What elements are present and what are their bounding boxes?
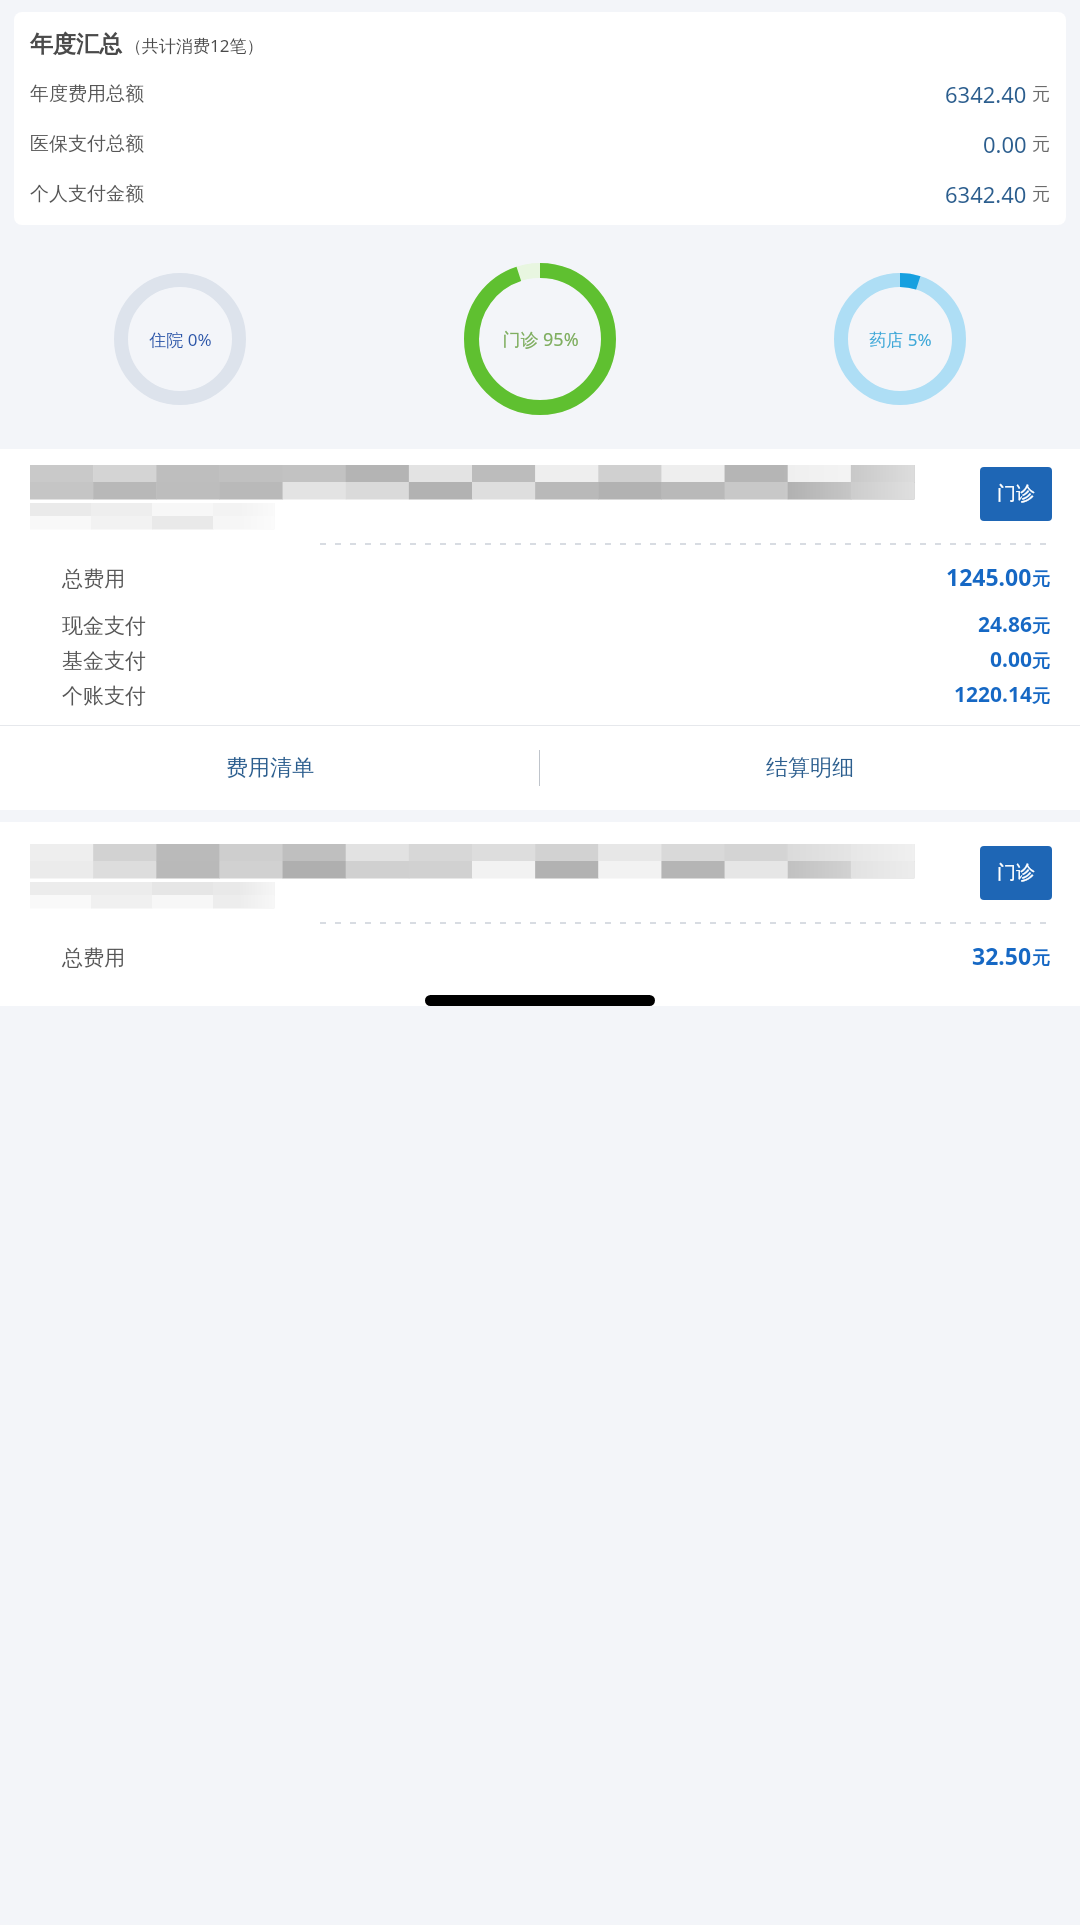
button[interactable]: 门诊 95% — [464, 263, 616, 415]
staticText: 元 — [1032, 568, 1050, 591]
button[interactable]: 门诊 — [0, 449, 1080, 810]
button[interactable]: 门诊 — [980, 467, 1052, 521]
staticText: 基金支付 — [62, 648, 146, 674]
button[interactable]: 门诊 — [0, 822, 1080, 1006]
staticText: 元 — [1032, 83, 1050, 106]
staticText: 0.00 — [990, 645, 1032, 674]
staticText: 元 — [1032, 947, 1050, 970]
staticText: 6342.40 — [945, 179, 1027, 209]
staticText: 年度汇总 — [30, 30, 122, 59]
staticText: 费用清单 — [226, 754, 314, 782]
button[interactable]: 结算明细 — [540, 726, 1080, 810]
staticText: 6342.40 — [945, 79, 1027, 109]
staticText: 总费用 — [62, 566, 125, 592]
staticText: 元 — [1032, 183, 1050, 206]
staticText: 24.86 — [978, 610, 1032, 639]
staticText: 元 — [1032, 650, 1050, 673]
staticText: 药店 5% — [869, 328, 932, 351]
staticText: 1220.14 — [954, 680, 1032, 709]
staticText: 住院 0% — [149, 328, 212, 351]
staticText: 总费用 — [62, 945, 125, 971]
staticText: 门诊 95% — [502, 327, 579, 352]
staticText: 个人支付金额 — [30, 182, 144, 206]
staticText: 门诊 — [997, 482, 1035, 506]
staticText: （共计消费12笔） — [125, 34, 264, 57]
staticText: 个账支付 — [62, 683, 146, 709]
staticText: 元 — [1032, 133, 1050, 156]
button[interactable]: 费用清单 — [0, 726, 539, 810]
staticText: 结算明细 — [766, 754, 854, 782]
button[interactable]: 门诊 — [980, 846, 1052, 900]
staticText: 现金支付 — [62, 613, 146, 639]
staticText: 元 — [1032, 685, 1050, 708]
staticText: 医保支付总额 — [30, 132, 144, 156]
staticText: 0.00 — [983, 129, 1027, 159]
button[interactable]: 年度汇总 — [14, 12, 1066, 225]
button[interactable]: 住院 0% — [114, 273, 246, 405]
staticText: 门诊 — [997, 861, 1035, 885]
staticText: 年度费用总额 — [30, 82, 144, 106]
staticText: 32.50 — [972, 940, 1032, 971]
button[interactable]: 药店 5% — [834, 273, 966, 405]
staticText: 1245.00 — [946, 561, 1032, 592]
staticText: 元 — [1032, 615, 1050, 638]
